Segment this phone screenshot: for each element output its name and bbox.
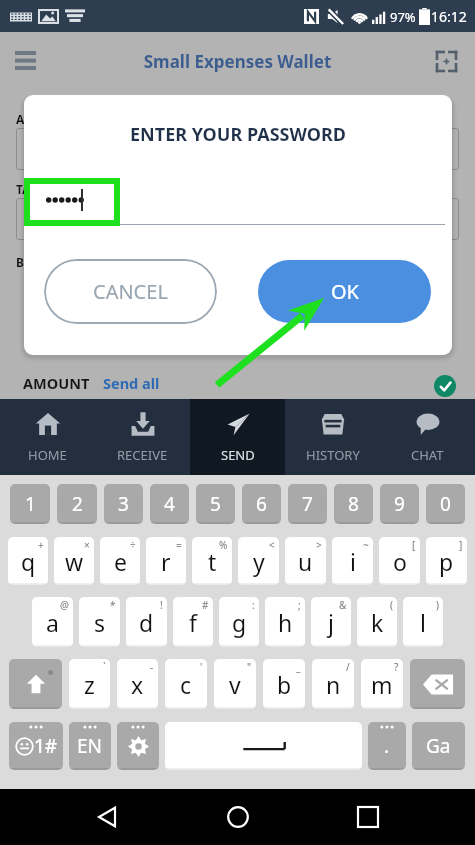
button[interactable]: Scan QR code (429, 44, 463, 78)
button[interactable]: u (285, 537, 326, 585)
button[interactable]: p (426, 537, 467, 585)
staticText: [ (412, 538, 416, 552)
staticText: OK (331, 278, 359, 305)
button[interactable]: q (8, 537, 48, 585)
button[interactable]: 6 (242, 484, 281, 524)
button[interactable]: 8 (334, 484, 373, 524)
staticText: 8 (348, 491, 359, 517)
button[interactable]: k (357, 597, 397, 647)
button[interactable] (117, 722, 159, 770)
staticText: Send all (103, 373, 160, 393)
staticText: . (384, 733, 390, 759)
staticText: HISTORY (306, 446, 360, 464)
staticText: t (208, 546, 217, 577)
button[interactable]: z (69, 659, 110, 709)
staticText: ADDRESS (16, 111, 70, 127)
button[interactable]: CANCEL (44, 259, 217, 324)
staticText: EN (77, 733, 103, 759)
staticText: @ (60, 598, 69, 612)
button[interactable]: b (263, 659, 305, 709)
staticText: c (180, 669, 192, 700)
button[interactable]: 3 (104, 484, 143, 524)
staticText: 5 (210, 491, 221, 517)
button[interactable]: a (32, 597, 73, 647)
button[interactable]: v (214, 659, 256, 709)
button[interactable]: 7 (288, 484, 327, 524)
staticText: a (46, 607, 59, 638)
button[interactable]: m (361, 659, 403, 709)
staticText: * (110, 598, 116, 612)
staticText: ? (394, 660, 399, 674)
button[interactable]: 1# (9, 722, 63, 770)
staticText: ( (390, 598, 393, 612)
button[interactable]: f (173, 597, 213, 647)
button[interactable]: x (117, 659, 158, 709)
button[interactable]: EN (69, 722, 111, 770)
staticText: q (21, 546, 36, 577)
button[interactable]: 5 (196, 484, 235, 524)
button[interactable]: s (79, 597, 120, 647)
button[interactable]: 4 (150, 484, 189, 524)
button[interactable]: HISTORY (285, 399, 380, 475)
button[interactable]: o (379, 537, 420, 585)
staticText: w (65, 546, 84, 577)
button[interactable]: 9 (380, 484, 419, 524)
staticText: # (202, 598, 209, 612)
button[interactable]: r (146, 537, 186, 585)
button[interactable]: y (238, 537, 279, 585)
button[interactable]: d (126, 597, 167, 647)
button[interactable]: w (54, 537, 94, 585)
button[interactable]: 2 (57, 484, 97, 524)
button[interactable]: Send all (103, 373, 160, 393)
button[interactable]: OK (258, 260, 431, 323)
button[interactable]: Back (84, 794, 130, 840)
button[interactable]: RECEIVE (95, 399, 190, 475)
staticText: y (253, 546, 265, 577)
staticText: BALANCE (16, 254, 72, 270)
staticText: k (371, 607, 384, 638)
button[interactable]: Ga (412, 722, 465, 770)
staticText: ÷ (130, 538, 136, 552)
button[interactable]: Valid (434, 375, 456, 397)
button[interactable]: l (403, 597, 443, 647)
button[interactable]: Menu (6, 41, 44, 79)
staticText: CANCEL (93, 278, 168, 305)
staticText: 1# (34, 733, 58, 759)
button[interactable]: CHAT (380, 399, 475, 475)
staticText: 97% (390, 8, 416, 26)
button[interactable]: . (368, 722, 406, 770)
staticText: v (229, 669, 241, 700)
staticText: s (94, 607, 106, 638)
staticText: p (439, 546, 454, 577)
button[interactable]: 1 (10, 484, 50, 524)
button[interactable]: 0 (426, 484, 465, 524)
button[interactable]: SEND (190, 399, 285, 475)
staticText: m (371, 669, 393, 700)
button[interactable]: h (265, 597, 305, 647)
button[interactable]: Recent apps (345, 794, 391, 840)
staticText: > (316, 538, 322, 552)
button[interactable] (410, 659, 465, 709)
staticText: ~ (363, 538, 369, 552)
staticText: 2 (72, 491, 83, 517)
staticText: : (252, 598, 255, 612)
button[interactable] (9, 659, 62, 709)
staticText: ENTER YOUR PASSWORD (24, 122, 452, 147)
staticText: + (38, 538, 44, 552)
button[interactable]: Home (215, 794, 261, 840)
button[interactable]: c (165, 659, 207, 709)
button[interactable]: HOME (0, 399, 95, 475)
staticText: 3 (118, 491, 129, 517)
staticText: h (278, 607, 293, 638)
staticText: j (328, 607, 334, 638)
button[interactable]: e (100, 537, 140, 585)
button[interactable] (165, 722, 362, 770)
staticText: 4 (164, 491, 175, 517)
staticText: d (139, 607, 154, 638)
button[interactable]: n (312, 659, 354, 709)
button[interactable]: j (311, 597, 351, 647)
staticText: r (161, 546, 171, 577)
button[interactable]: i (332, 537, 373, 585)
button[interactable]: g (219, 597, 259, 647)
button[interactable]: t (192, 537, 232, 585)
